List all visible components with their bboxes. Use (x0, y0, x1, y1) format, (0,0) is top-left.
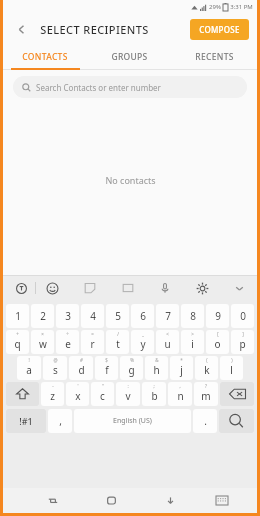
button[interactable]: + (6, 330, 29, 354)
button[interactable]: Back (151, 488, 190, 513)
button[interactable]: Search Contacts or enter number (13, 76, 247, 98)
staticText: l (230, 363, 233, 377)
button[interactable]: 7 (156, 304, 179, 328)
button[interactable]: " (91, 382, 114, 406)
staticText: # (80, 357, 83, 363)
staticText: ! (28, 357, 30, 363)
staticText: GROUPS (111, 51, 148, 63)
staticText: j (180, 363, 183, 377)
staticText: d (78, 363, 85, 377)
button[interactable]: 3 (56, 304, 79, 328)
staticText: 3 (65, 309, 71, 323)
button[interactable]: 9 (206, 304, 229, 328)
button[interactable]: ! (17, 356, 41, 380)
staticText: 3:31 PM (230, 3, 253, 11)
button[interactable]: , (168, 382, 192, 406)
button[interactable]: 0 (231, 304, 254, 328)
button[interactable]: > (181, 330, 204, 354)
button[interactable]: Search (219, 409, 254, 433)
button[interactable]: / (106, 330, 129, 354)
staticText: s (53, 363, 58, 377)
button[interactable]: Shift (6, 382, 39, 406)
staticText: No contacts (105, 174, 156, 186)
staticText: w (39, 337, 47, 351)
staticText: $ (105, 357, 108, 363)
button[interactable]: Keyboard (202, 488, 241, 513)
staticText: SELECT RECIPIENTS (40, 22, 149, 37)
button[interactable]: Settings (192, 278, 212, 298)
button[interactable]: # (69, 356, 93, 380)
staticText: . (204, 414, 207, 428)
staticText: 2 (40, 309, 46, 323)
staticText: Search Contacts or enter number (36, 82, 161, 93)
button[interactable]: 1 (6, 304, 29, 328)
button[interactable]: CONTACTS (3, 45, 87, 68)
staticText: % (130, 357, 134, 363)
button[interactable]: ; (142, 382, 166, 406)
button[interactable]: ÷ (56, 330, 79, 354)
button[interactable]: 2 (31, 304, 54, 328)
button[interactable]: 8 (181, 304, 204, 328)
button[interactable]: * (170, 356, 193, 380)
button[interactable]: ? (194, 382, 218, 406)
button[interactable]: @ (43, 356, 67, 380)
button[interactable]: ] (231, 330, 254, 354)
staticText: !#1 (19, 415, 33, 427)
button[interactable]: 6 (131, 304, 154, 328)
button[interactable]: . (193, 409, 217, 433)
staticText: 7 (165, 309, 171, 323)
button[interactable]: _ (131, 330, 154, 354)
button[interactable]: Backspace (220, 382, 254, 406)
button[interactable]: RECENTS (172, 45, 257, 68)
button[interactable]: !#1 (6, 409, 46, 433)
button[interactable]: 5 (106, 304, 129, 328)
staticText: ÷ (66, 331, 69, 337)
staticText: English (US) (113, 416, 152, 426)
button[interactable]: , (48, 409, 72, 433)
button[interactable]: GIF (118, 278, 138, 298)
button[interactable]: : (116, 382, 140, 406)
staticText: 1 (15, 309, 21, 323)
button[interactable]: ( (195, 356, 218, 380)
staticText: RECENTS (195, 51, 234, 63)
button[interactable]: & (145, 356, 168, 380)
button[interactable]: = (81, 330, 104, 354)
button[interactable]: ' (66, 382, 89, 406)
button[interactable]: 4 (81, 304, 104, 328)
button[interactable]: × (31, 330, 54, 354)
staticText: x (75, 389, 81, 403)
staticText: , (59, 414, 62, 428)
staticText: c (100, 389, 105, 403)
button[interactable]: Back (11, 19, 31, 39)
staticText: 8 (190, 309, 196, 323)
staticText: 5 (115, 309, 121, 323)
button[interactable]: Stickers (80, 278, 100, 298)
staticText: 4 (90, 309, 96, 323)
button[interactable]: GROUPS (87, 45, 172, 68)
button[interactable]: $ (95, 356, 118, 380)
staticText: m (201, 389, 211, 403)
staticText: - (52, 383, 54, 389)
button[interactable]: [ (206, 330, 229, 354)
button[interactable]: Home (92, 488, 131, 513)
button[interactable]: < (156, 330, 179, 354)
staticText: < (166, 331, 169, 337)
button[interactable]: % (120, 356, 143, 380)
button[interactable]: COMPOSE (190, 19, 249, 40)
staticText: 9 (215, 309, 221, 323)
button[interactable]: Recents (33, 488, 72, 513)
button[interactable]: - (41, 382, 64, 406)
staticText: p (239, 337, 246, 351)
button[interactable]: Collapse keyboard (229, 278, 249, 298)
staticText: 6 (140, 309, 146, 323)
staticText: b (151, 389, 158, 403)
staticText: g (128, 363, 135, 377)
button[interactable]: Emoji (42, 278, 62, 298)
staticText: v (125, 389, 131, 403)
button[interactable]: Text mode (11, 278, 31, 298)
button[interactable]: English (US) (74, 409, 191, 433)
button[interactable]: Voice input (155, 278, 175, 298)
staticText: / (117, 331, 119, 337)
staticText: n (177, 389, 184, 403)
button[interactable]: ) (220, 356, 243, 380)
